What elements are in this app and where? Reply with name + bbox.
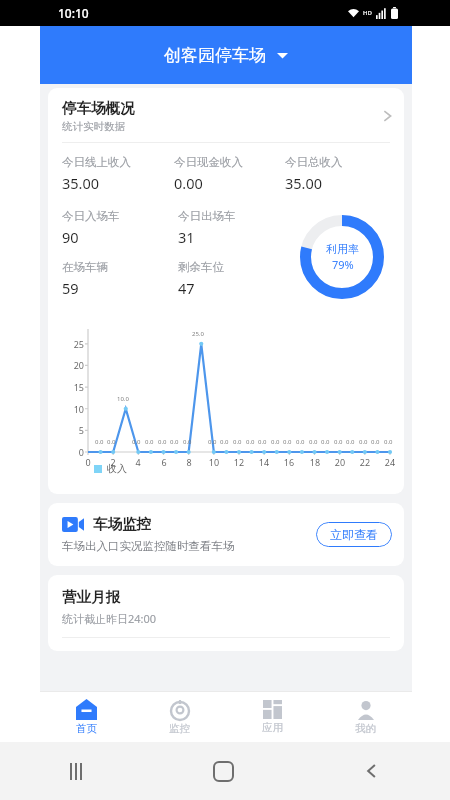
staticText: 今日总收入: [285, 155, 343, 169]
staticText: 35.00: [285, 173, 323, 193]
staticText: 4: [129, 456, 147, 468]
staticText: 24: [381, 456, 399, 468]
staticText: 利用率: [326, 242, 359, 256]
button[interactable]: 监控: [133, 692, 226, 742]
staticText: 14: [255, 456, 273, 468]
staticText: 停车场概况: [62, 99, 135, 117]
button[interactable]: 我的: [319, 692, 412, 742]
staticText: 0.0: [208, 438, 217, 446]
staticText: 22: [356, 456, 374, 468]
staticText: 47: [178, 278, 195, 298]
staticText: 5: [64, 424, 84, 436]
staticText: 监控: [169, 722, 190, 735]
staticText: 0.0: [158, 438, 167, 446]
staticText: 剩余车位: [178, 260, 224, 274]
staticText: 创客园停车场: [164, 45, 266, 66]
staticText: 0.00: [174, 173, 203, 193]
staticText: 0.0: [233, 438, 242, 446]
staticText: 0.0: [309, 438, 318, 446]
staticText: 0.0: [132, 438, 141, 446]
button[interactable]: 立即查看: [316, 522, 392, 547]
staticText: 车场监控: [93, 515, 151, 533]
staticText: 10: [64, 403, 84, 415]
staticText: 12: [230, 456, 248, 468]
staticText: 0.0: [95, 438, 104, 446]
staticText: 90: [62, 227, 79, 247]
staticText: 统计截止昨日24:00: [62, 611, 157, 626]
staticText: 0.0: [371, 438, 380, 446]
staticText: 0.0: [258, 438, 267, 446]
staticText: 10:10: [58, 5, 89, 21]
staticText: 0.0: [359, 438, 368, 446]
staticText: 6: [155, 456, 173, 468]
staticText: 8: [180, 456, 198, 468]
button[interactable]: 车场监控: [48, 503, 404, 566]
staticText: 在场车辆: [62, 260, 108, 274]
staticText: 0.0: [334, 438, 343, 446]
staticText: 25.0: [192, 330, 204, 338]
staticText: 统计实时数据: [62, 120, 125, 133]
staticText: 10: [205, 456, 223, 468]
staticText: 0.0: [220, 438, 229, 446]
staticText: 我的: [355, 722, 376, 735]
staticText: 今日入场车: [62, 209, 120, 223]
staticText: 0.0: [170, 438, 179, 446]
staticText: 0.0: [321, 438, 330, 446]
staticText: 营业月报: [62, 588, 120, 606]
staticText: 今日线上收入: [62, 155, 131, 169]
staticText: 应用: [262, 721, 283, 734]
staticText: 20: [331, 456, 349, 468]
staticText: 2: [104, 456, 122, 468]
staticText: 今日现金收入: [174, 155, 243, 169]
button[interactable]: 营业月报: [48, 575, 404, 651]
staticText: HD: [363, 9, 372, 17]
staticText: 今日出场车: [178, 209, 236, 223]
staticText: 收入: [107, 462, 127, 475]
staticText: 0.0: [246, 438, 255, 446]
staticText: 0: [64, 446, 84, 458]
staticText: 0.0: [183, 438, 192, 446]
staticText: 0: [79, 456, 97, 468]
staticText: 立即查看: [330, 527, 378, 542]
staticText: 25: [64, 338, 84, 350]
staticText: 0.0: [271, 438, 280, 446]
staticText: 0.0: [384, 438, 393, 446]
staticText: 0.0: [283, 438, 292, 446]
staticText: 16: [280, 456, 298, 468]
staticText: 59: [62, 278, 79, 298]
staticText: 20: [64, 359, 84, 371]
staticText: 0.0: [145, 438, 154, 446]
staticText: 0.0: [346, 438, 355, 446]
staticText: 35.00: [62, 173, 100, 193]
button[interactable]: 创客园停车场: [164, 45, 288, 66]
staticText: 79%: [332, 257, 354, 272]
staticText: 车场出入口实况监控随时查看车场: [62, 539, 235, 553]
staticText: 10.0: [117, 395, 129, 403]
button[interactable]: 停车场概况: [48, 88, 404, 142]
staticText: 0.0: [107, 438, 116, 446]
staticText: 首页: [76, 722, 97, 735]
button[interactable]: 首页: [40, 692, 133, 742]
staticText: 15: [64, 381, 84, 393]
staticText: 18: [306, 456, 324, 468]
staticText: 31: [178, 227, 195, 247]
button[interactable]: 应用: [226, 692, 319, 742]
staticText: 0.0: [296, 438, 305, 446]
